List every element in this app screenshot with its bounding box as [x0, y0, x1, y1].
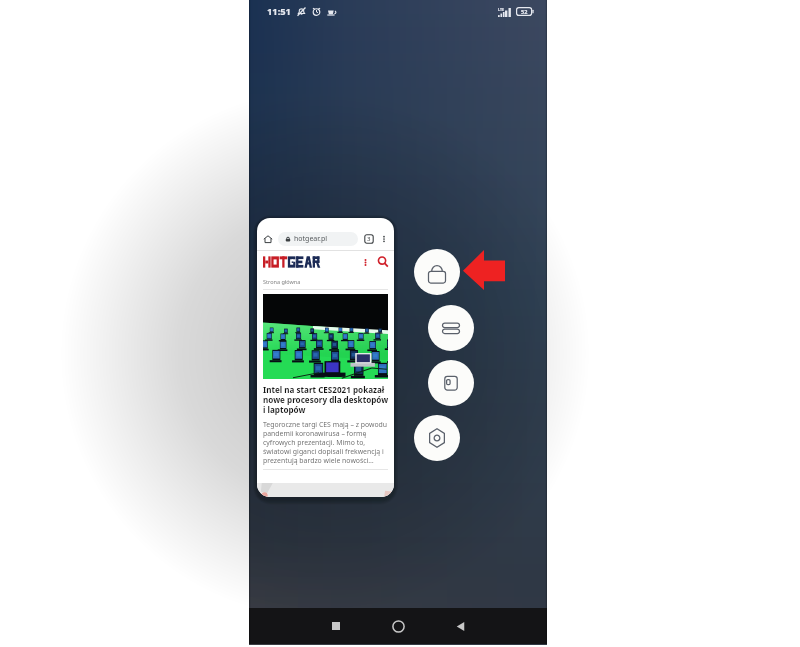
- button[interactable]: Lock: [414, 249, 460, 295]
- staticText: Tegoroczne targi CES mają – z powodu pan…: [263, 420, 391, 465]
- button[interactable]: Back: [445, 611, 475, 641]
- staticText: 52: [521, 8, 528, 15]
- staticText: hotgear.pl: [294, 234, 328, 244]
- button[interactable]: Split screen: [428, 305, 474, 351]
- staticText: 3: [367, 235, 371, 243]
- staticText: LTE: [498, 7, 504, 12]
- button[interactable]: hotgear.pl: [257, 218, 394, 497]
- staticText: Strona główna: [263, 278, 301, 285]
- button[interactable]: App info: [414, 415, 460, 461]
- button[interactable]: Home: [383, 611, 413, 641]
- staticText: 11:51: [267, 5, 291, 18]
- staticText: Intel na start CES2021 pokazał nowe proc…: [263, 384, 392, 415]
- button[interactable]: Recents: [321, 611, 351, 641]
- button[interactable]: Picture in picture: [428, 360, 474, 406]
